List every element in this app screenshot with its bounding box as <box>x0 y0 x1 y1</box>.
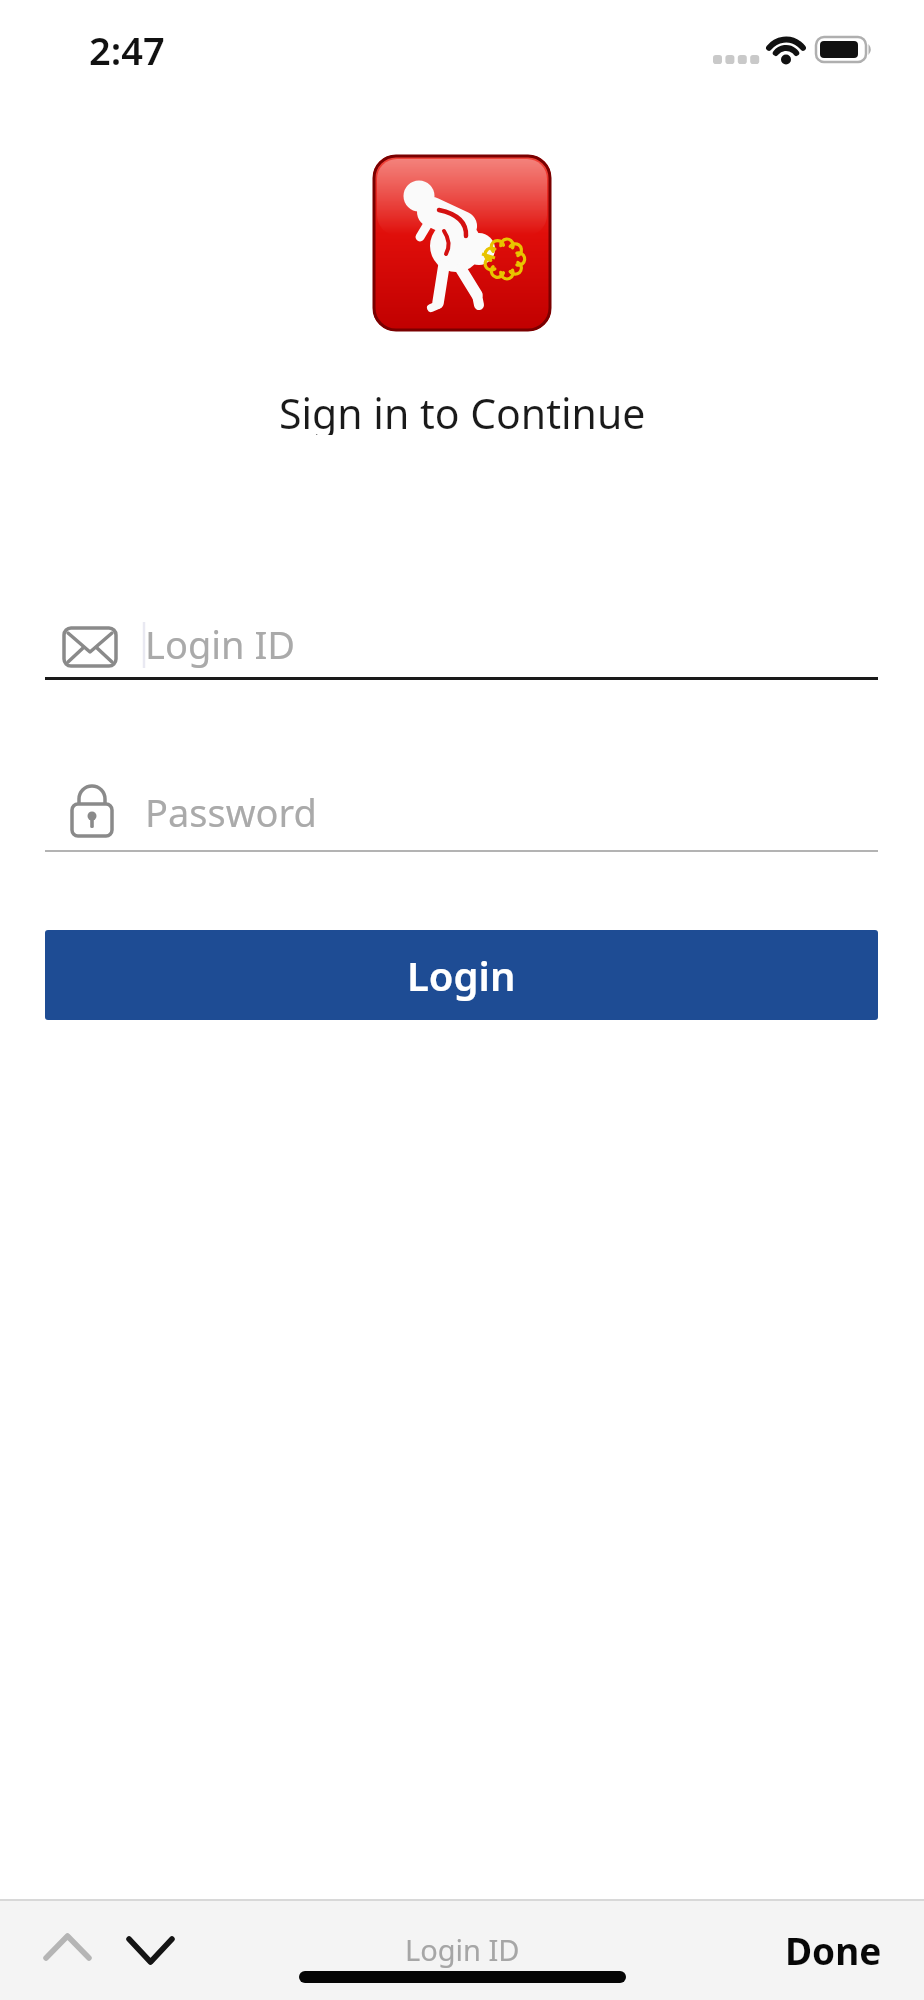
staticText: Password <box>145 786 317 838</box>
button[interactable] <box>115 1921 185 1973</box>
button[interactable]: Password <box>45 778 878 846</box>
staticText: Login ID <box>145 618 296 670</box>
staticText: Login ID <box>405 1930 520 1969</box>
staticText: 2:47 <box>89 24 165 74</box>
staticText: Sign in to Continue <box>279 385 646 435</box>
button[interactable]: Done <box>771 1922 895 1978</box>
button[interactable] <box>32 1921 102 1973</box>
staticText: Login <box>407 948 516 1002</box>
staticText: Done <box>785 1925 882 1975</box>
button[interactable]: Login <box>45 930 878 1020</box>
button[interactable]: Login ID <box>45 608 878 680</box>
